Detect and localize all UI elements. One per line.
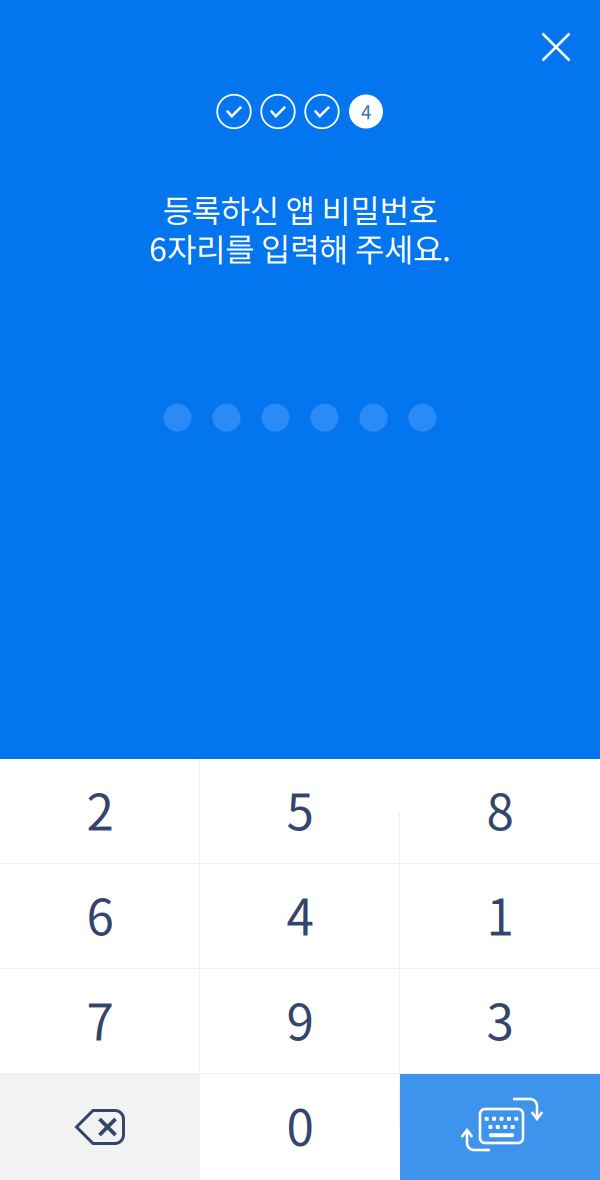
staticText: 9 (286, 983, 313, 1055)
staticText: 6 (86, 878, 113, 950)
staticText: 7 (86, 983, 113, 1055)
staticText: 2 (86, 773, 113, 845)
button[interactable]: 4 (200, 864, 400, 969)
button[interactable]: 5 (200, 759, 400, 864)
staticText: 1 (486, 878, 513, 950)
button[interactable]: Delete (0, 1074, 200, 1180)
staticText: 4 (361, 97, 371, 124)
staticText: 8 (486, 773, 513, 845)
button[interactable]: 3 (400, 969, 600, 1074)
staticText: 6자리를 입력해 주세요. (149, 224, 451, 271)
button[interactable]: Change keypad (400, 1074, 600, 1180)
button[interactable]: 0 (200, 1074, 400, 1180)
button[interactable]: 6 (0, 864, 200, 969)
button[interactable]: 1 (400, 864, 600, 969)
button[interactable]: 9 (200, 969, 400, 1074)
staticText: 3 (486, 983, 513, 1055)
staticText: 5 (286, 773, 313, 845)
button[interactable]: 8 (400, 759, 600, 864)
button[interactable]: 2 (0, 759, 200, 864)
button[interactable]: Close (512, 1, 600, 93)
staticText: 등록하신 앱 비밀번호 (162, 186, 437, 232)
button[interactable]: 7 (0, 969, 200, 1074)
staticText: 4 (286, 878, 313, 950)
staticText: 0 (286, 1089, 313, 1160)
